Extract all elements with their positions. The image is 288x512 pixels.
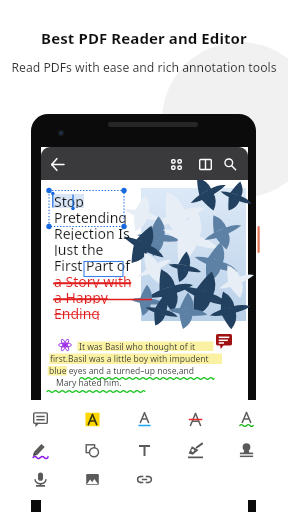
staticText: a Story with <box>54 272 132 288</box>
staticText: Pretending <box>54 208 127 224</box>
button[interactable]: Reading mode <box>194 153 216 175</box>
staticText: a Happy <box>54 288 108 304</box>
staticText: first.Basil was a little boy with impude… <box>50 353 209 365</box>
button[interactable]: Squiggly underline <box>235 408 257 430</box>
staticText: Read PDFs with ease and rich annotation … <box>0 59 288 76</box>
button[interactable]: Shapes <box>81 439 103 461</box>
button[interactable]: Search <box>219 153 241 175</box>
staticText: Just the <box>54 240 104 256</box>
staticText: Stop <box>54 192 84 208</box>
button[interactable]: Strikethrough <box>184 408 206 430</box>
button[interactable]: Stamp <box>235 439 257 461</box>
staticText: blue eyes and a turned–up nose,and <box>49 365 194 377</box>
staticText: Rejection Is <box>54 224 130 240</box>
staticText: First Part of <box>54 256 131 272</box>
button[interactable]: Highlight <box>81 408 103 430</box>
staticText: Best PDF Reader and Editor <box>0 28 288 48</box>
button[interactable]: Back <box>46 153 68 175</box>
button[interactable]: Underline <box>133 408 155 430</box>
button[interactable]: Insert image <box>81 468 103 490</box>
staticText: It was Basil who thought of it <box>79 341 196 353</box>
button[interactable]: Thumbnails <box>165 153 187 175</box>
button[interactable]: Voice note <box>29 468 51 490</box>
button[interactable]: Insert link <box>133 468 155 490</box>
button[interactable]: Note <box>29 408 51 430</box>
staticText: Ending <box>54 304 100 320</box>
staticText: Mary hated him. <box>56 377 122 389</box>
button[interactable]: Text box <box>133 439 155 461</box>
button[interactable]: Signature <box>184 439 206 461</box>
button[interactable]: Draw <box>29 439 51 461</box>
